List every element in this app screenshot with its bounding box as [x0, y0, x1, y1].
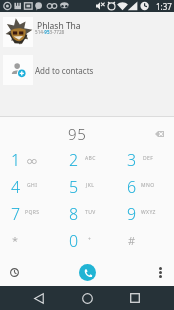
staticText: 4: [11, 176, 21, 198]
button[interactable]: 4: [0, 173, 58, 200]
staticText: GHI: [27, 182, 38, 189]
staticText: JKL: [86, 182, 95, 189]
staticText: #: [128, 233, 136, 248]
button[interactable]: 8: [58, 200, 116, 227]
staticText: DEF: [143, 155, 154, 162]
staticText: 5: [69, 176, 79, 198]
button[interactable]: Add to contacts: [0, 55, 174, 85]
staticText: *: [12, 233, 19, 248]
staticText: Phlash Tha: [37, 20, 81, 32]
button[interactable]: 9: [116, 200, 174, 227]
button[interactable]: 3: [116, 146, 174, 173]
button[interactable]: 0: [58, 227, 116, 254]
button[interactable]: Recent apps: [115, 286, 155, 310]
staticText: 9: [127, 203, 137, 225]
button[interactable]: #: [116, 227, 174, 254]
button[interactable]: Back: [19, 286, 59, 310]
staticText: 1: [11, 149, 21, 171]
button[interactable]: 5: [58, 173, 116, 200]
button[interactable]: *: [0, 227, 58, 254]
button[interactable]: More options: [150, 262, 170, 282]
button[interactable]: Home: [67, 286, 107, 310]
button[interactable]: Call history: [4, 262, 24, 282]
button[interactable]: 7: [0, 200, 58, 227]
staticText: ABC: [85, 155, 96, 162]
staticText: PQRS: [25, 209, 40, 216]
staticText: 0: [69, 230, 79, 252]
staticText: 1:37: [156, 1, 172, 12]
staticText: 3: [127, 149, 137, 171]
staticText: Add to contacts: [35, 65, 94, 76]
staticText: 514-953-7728: [35, 29, 65, 35]
staticText: +: [88, 236, 92, 243]
staticText: 2: [69, 149, 79, 171]
staticText: 95: [68, 124, 87, 144]
staticText: 6: [127, 176, 137, 198]
staticText: MNO: [141, 182, 155, 189]
button[interactable]: 1: [0, 146, 58, 173]
button[interactable]: Call: [79, 264, 96, 281]
staticText: TUV: [85, 209, 96, 216]
button[interactable]: 6: [116, 173, 174, 200]
button[interactable]: Backspace: [144, 117, 174, 146]
staticText: 7: [11, 203, 21, 225]
button[interactable]: Phlash Tha: [0, 17, 174, 48]
staticText: 8: [69, 203, 79, 225]
staticText: WXYZ: [141, 209, 156, 216]
button[interactable]: 2: [58, 146, 116, 173]
